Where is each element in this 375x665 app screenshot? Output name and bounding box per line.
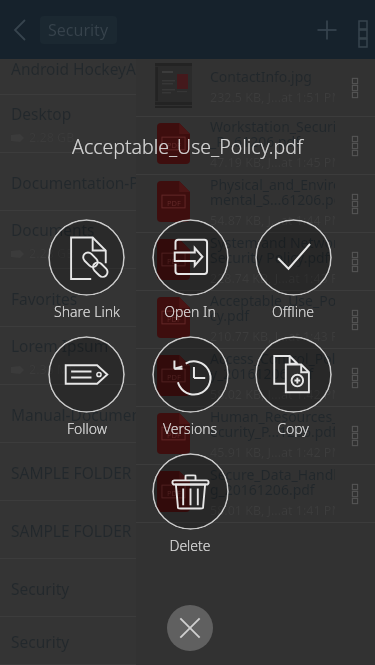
- button[interactable]: ContactInfo.jpg: [136, 59, 375, 117]
- staticText: Acceptable_Use_Policy.pdf: [0, 133, 375, 160]
- button[interactable]: Item options: [335, 68, 375, 108]
- staticText: SAMPLE FOLDER: [11, 520, 132, 541]
- staticText: Favorites: [11, 288, 78, 309]
- button[interactable]: [152, 336, 229, 413]
- staticText: ContactInfo.jpg: [210, 67, 312, 86]
- staticText: PDF: [167, 372, 181, 382]
- staticText: 47.19 KB, J...at 1:45 PM: [210, 154, 335, 171]
- staticText: Follow: [27, 419, 147, 438]
- staticText: 228.74 KB, J...at 1:43 PM: [210, 270, 335, 287]
- staticText: Delete: [130, 536, 250, 555]
- button[interactable]: PDF: [136, 117, 375, 175]
- button[interactable]: [255, 336, 332, 413]
- staticText: Android HockeyAp: [11, 58, 136, 79]
- button[interactable]: Back: [4, 13, 38, 47]
- staticText: Workstation_Security _P...61206.pdf: [210, 117, 335, 151]
- button[interactable]: Security: [48, 16, 109, 44]
- staticText: PDF: [167, 140, 181, 150]
- staticText: 45.91 KB, J...at 1:42 PM: [210, 444, 335, 461]
- staticText: 210.77 KB, J...at 1:43 PM: [210, 328, 335, 345]
- button[interactable]: Lorem Ipsum: [0, 327, 136, 385]
- staticText: PDF: [167, 256, 181, 266]
- staticText: PDF: [167, 198, 181, 208]
- button[interactable]: Item options: [335, 416, 375, 456]
- button[interactable]: PDF: [136, 233, 375, 291]
- staticText: Open In: [130, 302, 250, 321]
- staticText: PDF: [167, 430, 181, 440]
- button[interactable]: Documentation-PD: [0, 153, 136, 211]
- staticText: Share Link: [27, 302, 147, 321]
- staticText: Copy: [233, 419, 353, 438]
- button[interactable]: Item options: [335, 474, 375, 514]
- button[interactable]: Add: [310, 13, 344, 47]
- staticText: 58.02 KB, J...at 1:42 PM: [210, 386, 335, 403]
- button[interactable]: Close: [167, 605, 213, 651]
- staticText: System and Network Security Policy.pdf: [210, 233, 335, 267]
- staticText: 58.01 KB, J...at 1:41 PM: [210, 502, 335, 519]
- button[interactable]: More options: [348, 14, 375, 44]
- button[interactable]: PDF: [136, 349, 375, 407]
- staticText: PDF: [167, 488, 181, 498]
- staticText: SAMPLE FOLDER: [11, 462, 132, 483]
- staticText: Security: [11, 631, 70, 652]
- staticText: Access_Control_Polic y_20161206.pdf: [210, 349, 335, 383]
- staticText: Desktop: [11, 103, 72, 124]
- button[interactable]: Documents: [0, 211, 136, 269]
- staticText: Lorem Ipsum: [11, 335, 109, 356]
- button[interactable]: SAMPLE FOLDER: [0, 501, 136, 559]
- button[interactable]: Manual-Document: [0, 385, 136, 443]
- button[interactable]: [255, 219, 332, 296]
- button[interactable]: [48, 219, 125, 296]
- button[interactable]: Item options: [335, 126, 375, 166]
- staticText: Acceptable_Use_Poli cy.pdf: [210, 291, 335, 325]
- staticText: 2.28 GB: [29, 245, 75, 262]
- staticText: PDF: [167, 314, 181, 324]
- button[interactable]: PDF: [136, 291, 375, 349]
- button[interactable]: [152, 453, 229, 530]
- staticText: Documentation-PD: [11, 172, 136, 193]
- button[interactable]: Item options: [335, 184, 375, 224]
- button[interactable]: [152, 219, 229, 296]
- staticText: Secure_Data_Handlin g_20161206.pdf: [210, 465, 335, 499]
- button[interactable]: Item options: [335, 358, 375, 398]
- button[interactable]: Item options: [335, 242, 375, 282]
- button[interactable]: PDF: [136, 465, 375, 523]
- button[interactable]: PDF: [136, 407, 375, 465]
- button[interactable]: PDF: [136, 175, 375, 233]
- staticText: 54.87 KB, J...at 1:44 PM: [210, 212, 335, 229]
- button[interactable]: Android HockeyAp: [0, 59, 136, 95]
- staticText: Human_Resources_S ecurity_P...1206.pdf: [210, 407, 335, 441]
- button[interactable]: SAMPLE FOLDER: [0, 443, 136, 501]
- staticText: Physical_and_Environ mental_S...61206.pd…: [210, 175, 335, 209]
- staticText: Documents: [11, 219, 95, 240]
- staticText: Versions: [130, 419, 250, 438]
- button[interactable]: Favorites: [0, 269, 136, 327]
- staticText: 2.36 MB: [29, 361, 77, 378]
- button[interactable]: Desktop: [0, 95, 136, 153]
- staticText: Security: [48, 19, 109, 41]
- button[interactable]: Item options: [335, 300, 375, 340]
- staticText: Manual-Document: [11, 404, 136, 425]
- staticText: Offline: [233, 302, 353, 321]
- button[interactable]: [48, 336, 125, 413]
- staticText: Security: [11, 578, 70, 599]
